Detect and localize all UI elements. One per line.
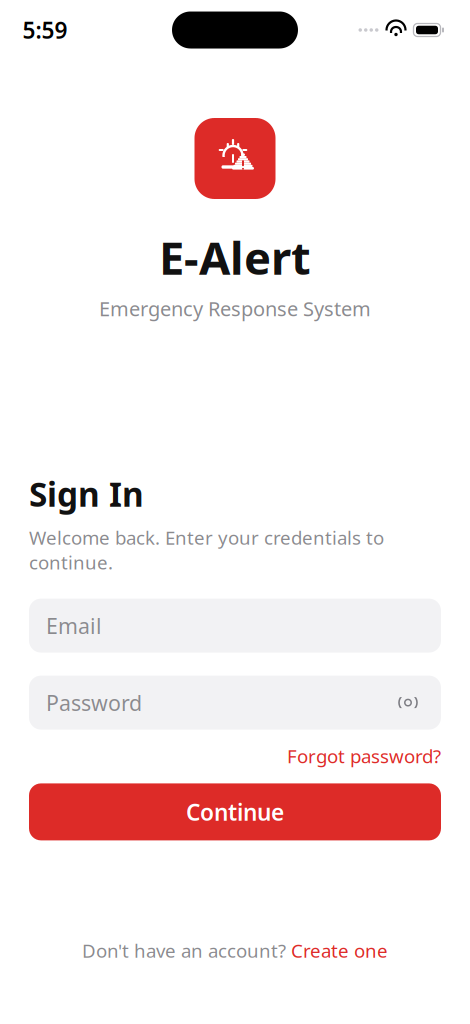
button[interactable]: Forgot password? bbox=[287, 744, 441, 768]
staticText: Don't have an account? bbox=[82, 938, 286, 963]
staticText: Sign In bbox=[29, 472, 144, 516]
staticText: 5:59 bbox=[22, 15, 67, 45]
button[interactable]: Continue bbox=[29, 783, 441, 840]
staticText: Password bbox=[46, 688, 142, 717]
staticText: Welcome back. Enter your credentials to … bbox=[29, 525, 384, 575]
staticText: E-Alert bbox=[159, 227, 311, 287]
staticText: Create one bbox=[291, 938, 388, 963]
button[interactable]: Show password bbox=[392, 688, 424, 718]
button[interactable]: Create one bbox=[291, 938, 388, 963]
staticText: Emergency Response System bbox=[99, 295, 371, 322]
staticText: Email bbox=[46, 611, 102, 640]
staticText: Forgot password? bbox=[287, 744, 441, 768]
staticText: Continue bbox=[186, 797, 284, 827]
